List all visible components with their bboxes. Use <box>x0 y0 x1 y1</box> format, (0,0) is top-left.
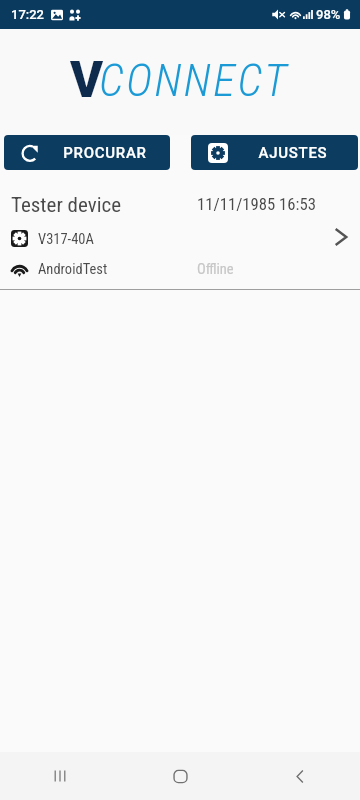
staticText: 17:22 <box>11 7 44 22</box>
button[interactable]: Tester device <box>0 177 360 290</box>
staticText: 98% <box>316 7 341 22</box>
button[interactable]: PROCURAR <box>4 135 170 170</box>
staticText: V <box>70 51 104 110</box>
staticText: Tester device <box>11 193 122 218</box>
staticText: V317-40A <box>38 231 94 248</box>
staticText: 11/11/1985 16:53 <box>197 195 316 215</box>
staticText: CONNECT <box>99 54 290 107</box>
button[interactable]: Back <box>240 752 360 800</box>
staticText: PROCURAR <box>40 144 170 162</box>
button[interactable]: AJUSTES <box>191 135 358 170</box>
button[interactable]: Home <box>120 752 240 800</box>
staticText: AJUSTES <box>228 144 358 162</box>
button[interactable]: Recent apps <box>0 752 120 800</box>
staticText: AndroidTest <box>38 261 108 278</box>
staticText: Offline <box>197 261 234 278</box>
